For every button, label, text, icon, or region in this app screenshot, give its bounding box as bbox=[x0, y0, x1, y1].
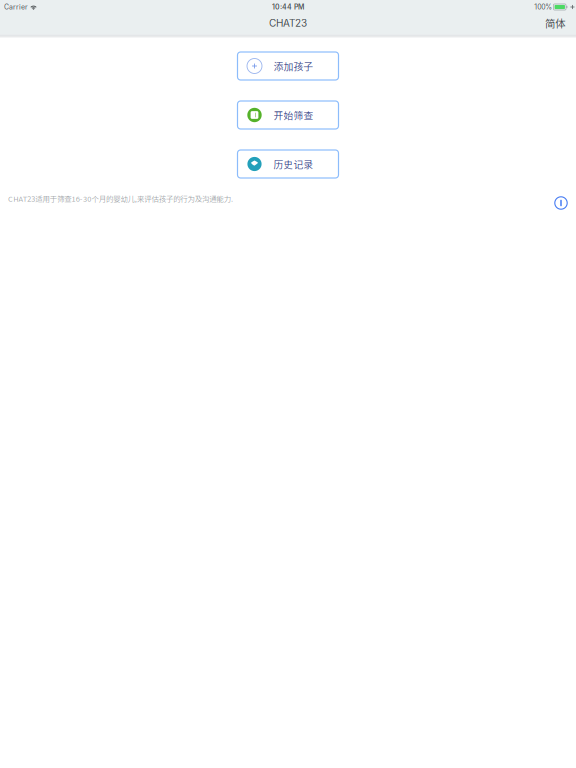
staticText: 历史记录 bbox=[273, 157, 313, 171]
button[interactable]: Information bbox=[554, 193, 568, 210]
button[interactable]: 添加孩子 bbox=[237, 52, 338, 80]
button[interactable]: 开始筛查 bbox=[237, 101, 338, 129]
staticText: CHAT23适用于筛查16-30个月的婴幼儿,来评估孩子的行为及沟通能力. bbox=[8, 193, 233, 204]
button[interactable]: 简体 bbox=[534, 14, 576, 34]
staticText: 简体 bbox=[545, 15, 565, 31]
staticText: 开始筛查 bbox=[273, 108, 313, 122]
staticText: 10:44 PM bbox=[272, 3, 304, 11]
staticText: Carrier bbox=[4, 3, 28, 11]
staticText: 100% bbox=[534, 3, 552, 11]
button[interactable]: 历史记录 bbox=[237, 150, 338, 178]
staticText: CHAT23 bbox=[269, 17, 307, 29]
staticText: 添加孩子 bbox=[273, 59, 313, 73]
